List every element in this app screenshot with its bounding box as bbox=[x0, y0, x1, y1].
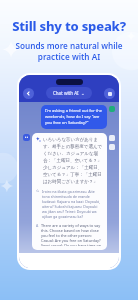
staticText: Sounds more natural while practice with … bbox=[15, 40, 123, 62]
button[interactable]: Copy bbox=[109, 144, 115, 150]
staticText: いろいろな言い方があります。相手との親密度で選んでください。カジュアルな場合：「… bbox=[43, 137, 103, 185]
button[interactable]: Back bbox=[23, 88, 34, 99]
staticText: ら bbox=[36, 189, 40, 193]
button[interactable]: Chat with AI ⌄ bbox=[46, 87, 92, 99]
button[interactable]: Play audio bbox=[109, 135, 115, 141]
button[interactable]: End session bbox=[104, 88, 115, 99]
button[interactable]: I'm asking a friend out for the weekends… bbox=[41, 105, 107, 129]
other: AI avatar bbox=[23, 134, 30, 141]
staticText: There are a variety of ways to say this.… bbox=[41, 223, 103, 246]
other: User avatar bbox=[109, 106, 115, 112]
staticText: Chat with AI ⌄ bbox=[53, 90, 85, 96]
staticText: I'm asking a friend out for the weekends… bbox=[45, 108, 103, 126]
staticText: A bbox=[36, 223, 39, 228]
staticText: Still shy to speak? bbox=[12, 17, 126, 35]
staticText: Iroiro na iikata ga arimasu. Aite tono s… bbox=[42, 189, 103, 219]
button[interactable]: いろいろな言い方があります。相手との親密度で選んでください。カジュアルな場合：「… bbox=[32, 133, 107, 250]
